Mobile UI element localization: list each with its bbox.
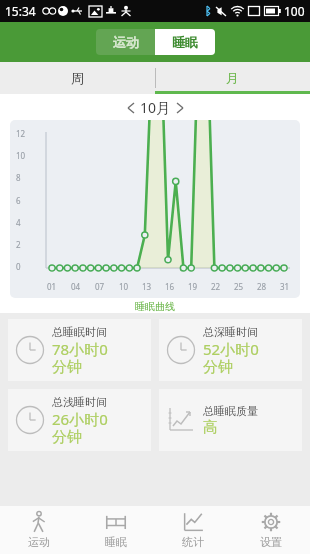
staticText: 总睡眠质量 [203, 404, 258, 418]
staticText: 周 [71, 70, 84, 86]
staticText: 31 [280, 281, 290, 292]
staticText: 总浅睡时间 [52, 395, 107, 409]
button[interactable]: Previous month [126, 101, 136, 115]
staticText: 01 [47, 281, 57, 292]
staticText: 睡眠 [105, 535, 127, 549]
staticText: 10月 [140, 98, 171, 117]
staticText: 总睡眠时间 [52, 325, 107, 339]
button[interactable]: 总睡眠时间 [8, 319, 151, 381]
staticText: 总深睡时间 [203, 325, 258, 339]
staticText: 0 [16, 261, 21, 272]
button[interactable]: 睡眠 [155, 29, 215, 55]
staticText: 6 [16, 195, 21, 206]
staticText: 19 [188, 281, 198, 292]
button[interactable]: Next month [175, 101, 185, 115]
staticText: 设置 [260, 535, 282, 549]
button[interactable]: 周 [0, 62, 155, 94]
staticText: 睡眠 [172, 34, 198, 50]
staticText: 25 [234, 281, 244, 292]
staticText: 16 [165, 281, 175, 292]
staticText: 78小时0 分钟 [52, 339, 108, 376]
staticText: 10 [16, 150, 26, 161]
staticText: 运动 [28, 535, 50, 549]
staticText: 52小时0 分钟 [203, 339, 259, 376]
button[interactable]: 睡眠 [77, 506, 154, 554]
staticText: 15:34 [5, 3, 36, 19]
staticText: 2 [16, 239, 21, 250]
staticText: 10 [119, 281, 129, 292]
button[interactable]: 运动 [96, 29, 155, 55]
staticText: 运动 [113, 34, 139, 50]
staticText: 07 [95, 281, 105, 292]
staticText: 4 [16, 217, 21, 228]
staticText: 22 [211, 281, 221, 292]
button[interactable]: 运动 [0, 506, 77, 554]
staticText: 睡眠曲线 [0, 300, 310, 313]
staticText: 8 [16, 172, 21, 183]
staticText: 12 [16, 128, 26, 139]
staticText: 月 [226, 70, 239, 86]
staticText: 04 [71, 281, 81, 292]
button[interactable]: 总深睡时间 [159, 319, 302, 381]
button[interactable]: 总睡眠质量 [159, 389, 302, 451]
staticText: 13 [142, 281, 152, 292]
staticText: 28 [257, 281, 267, 292]
staticText: 100 [284, 3, 305, 19]
button[interactable]: 统计 [154, 506, 232, 554]
staticText: 高 [203, 418, 218, 437]
button[interactable]: 总浅睡时间 [8, 389, 151, 451]
staticText: 26小时0 分钟 [52, 409, 108, 446]
button[interactable]: 设置 [232, 506, 310, 554]
button[interactable]: 月 [155, 62, 310, 94]
staticText: 统计 [182, 535, 204, 549]
